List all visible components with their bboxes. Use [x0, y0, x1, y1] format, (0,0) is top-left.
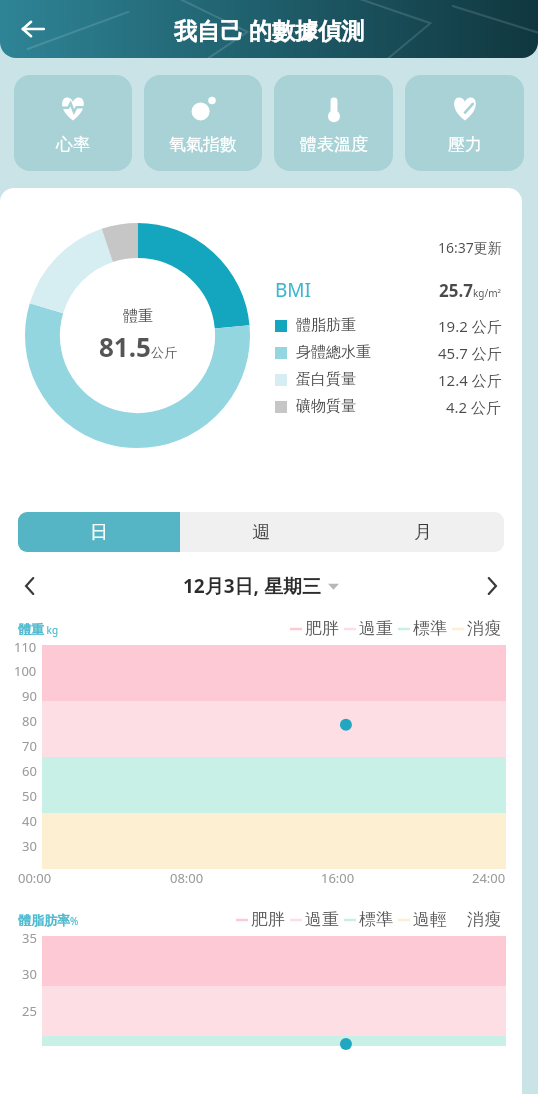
staticText: 過重 [305, 909, 339, 930]
button[interactable]: Back [10, 6, 56, 52]
button[interactable]: 週 [180, 512, 342, 552]
staticText: 體脂肪率% [18, 912, 79, 928]
staticText: 12.4 公斤 [438, 370, 502, 390]
staticText: 16:00 [321, 869, 355, 887]
staticText: 日 [90, 521, 108, 544]
staticText: 氧氣指數 [169, 134, 237, 155]
staticText: 心率 [56, 134, 90, 155]
button[interactable]: 心率 [14, 75, 132, 171]
staticText: 35 [22, 929, 37, 947]
staticText: 體重 kg [18, 621, 59, 637]
staticText: 消瘦 [467, 618, 501, 639]
staticText: 25 [22, 1002, 37, 1020]
staticText: 蛋白質量 [296, 370, 356, 389]
button[interactable]: 日 [18, 512, 180, 552]
staticText: 110 [14, 638, 37, 656]
button[interactable]: 壓力 [405, 75, 524, 171]
staticText: 過重 [359, 618, 393, 639]
button[interactable]: 氧氣指數 [144, 75, 262, 171]
staticText: 週 [252, 521, 270, 544]
staticText: 肥胖 [305, 618, 339, 639]
staticText: 08:00 [170, 869, 204, 887]
staticText: 100 [14, 662, 37, 680]
button[interactable]: 體表溫度 [274, 75, 393, 171]
staticText: 24:00 [472, 869, 506, 887]
staticText: 40 [22, 812, 37, 830]
staticText: 19.2 公斤 [438, 316, 502, 336]
staticText: 4.2 公斤 [446, 397, 502, 417]
staticText: 90 [22, 687, 37, 705]
staticText: 我自己 的數據偵測 [174, 14, 364, 45]
staticText: 體重 [123, 307, 153, 326]
staticText: 消瘦 [467, 909, 501, 930]
staticText: 50 [22, 787, 37, 805]
staticText: 80 [22, 712, 37, 730]
staticText: 壓力 [448, 134, 482, 155]
staticText: 00:00 [18, 869, 52, 887]
button[interactable]: Next day [474, 568, 510, 604]
staticText: 60 [22, 762, 37, 780]
staticText: 81.5公斤 [99, 329, 177, 364]
button[interactable]: Previous day [12, 568, 48, 604]
staticText: 身體總水重 [296, 343, 371, 362]
staticText: 16:37更新 [438, 238, 502, 257]
staticText: 30 [22, 965, 37, 983]
staticText: 45.7 公斤 [438, 343, 502, 363]
staticText: 體脂肪重 [296, 316, 356, 335]
staticText: 標準 [413, 618, 447, 639]
staticText: BMI [275, 277, 312, 303]
staticText: 肥胖 [251, 909, 285, 930]
staticText: 12月3日, 星期三 [183, 573, 321, 599]
staticText: 70 [22, 737, 37, 755]
staticText: 30 [22, 837, 37, 855]
button[interactable]: 月 [342, 512, 504, 552]
staticText: 礦物質量 [296, 397, 356, 416]
staticText: 標準 [359, 909, 393, 930]
staticText: 體表溫度 [300, 134, 368, 155]
staticText: 過輕 [413, 909, 447, 930]
staticText: 25.7kg/m² [439, 279, 502, 302]
staticText: 月 [414, 521, 432, 544]
